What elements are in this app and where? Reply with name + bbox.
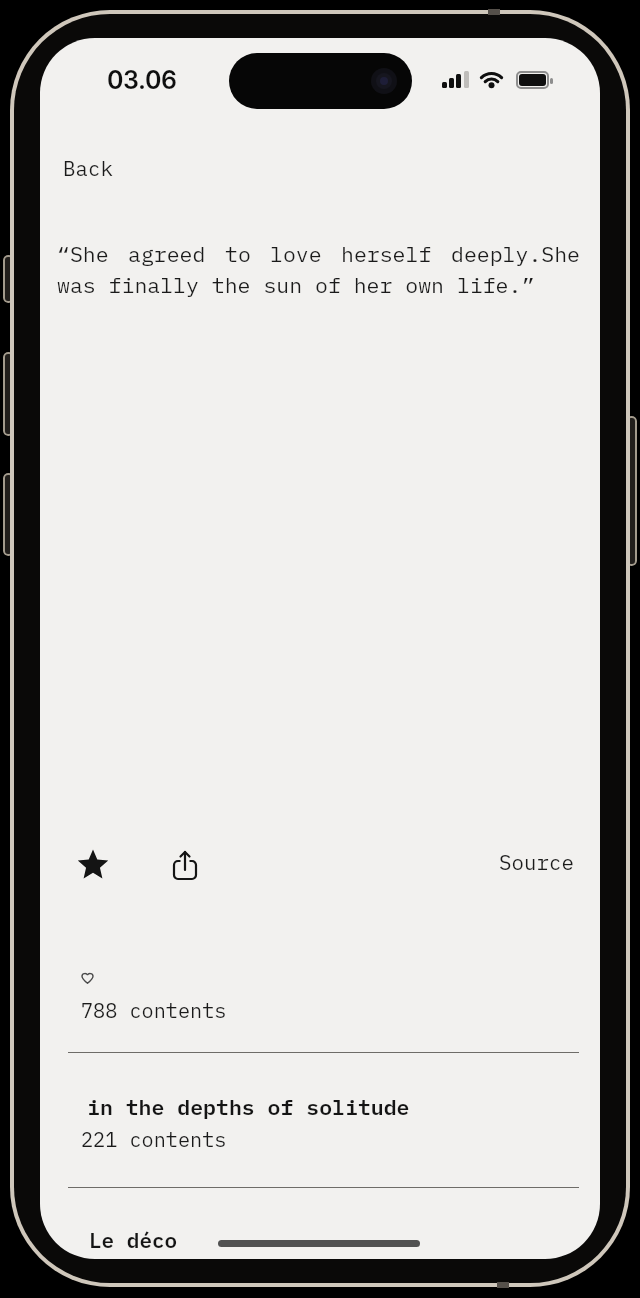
- button[interactable]: Source: [499, 849, 574, 876]
- staticText: was finally the sun of her own life.”: [57, 271, 535, 299]
- staticText: 221 contents: [81, 1126, 227, 1152]
- button[interactable]: [77, 849, 109, 881]
- button[interactable]: Back: [63, 155, 113, 182]
- staticText: 03.06: [107, 65, 177, 95]
- staticText: agreed: [128, 240, 206, 268]
- staticText: deeply.She: [451, 240, 581, 268]
- staticText: love: [270, 240, 322, 268]
- staticText: in the depths of solitude: [87, 1093, 410, 1121]
- button[interactable]: Le déco: [40, 1218, 600, 1259]
- staticText: to: [225, 240, 251, 268]
- staticText: herself: [341, 240, 432, 268]
- staticText: Le déco: [89, 1226, 178, 1253]
- button[interactable]: 788 contents: [81, 997, 381, 1027]
- staticText: 788 contents: [81, 997, 227, 1023]
- button[interactable]: in the depths of solitude: [40, 1088, 600, 1188]
- staticText: “She: [57, 240, 109, 268]
- staticText: Source: [499, 849, 574, 876]
- button[interactable]: [170, 848, 202, 884]
- staticText: Back: [63, 155, 113, 182]
